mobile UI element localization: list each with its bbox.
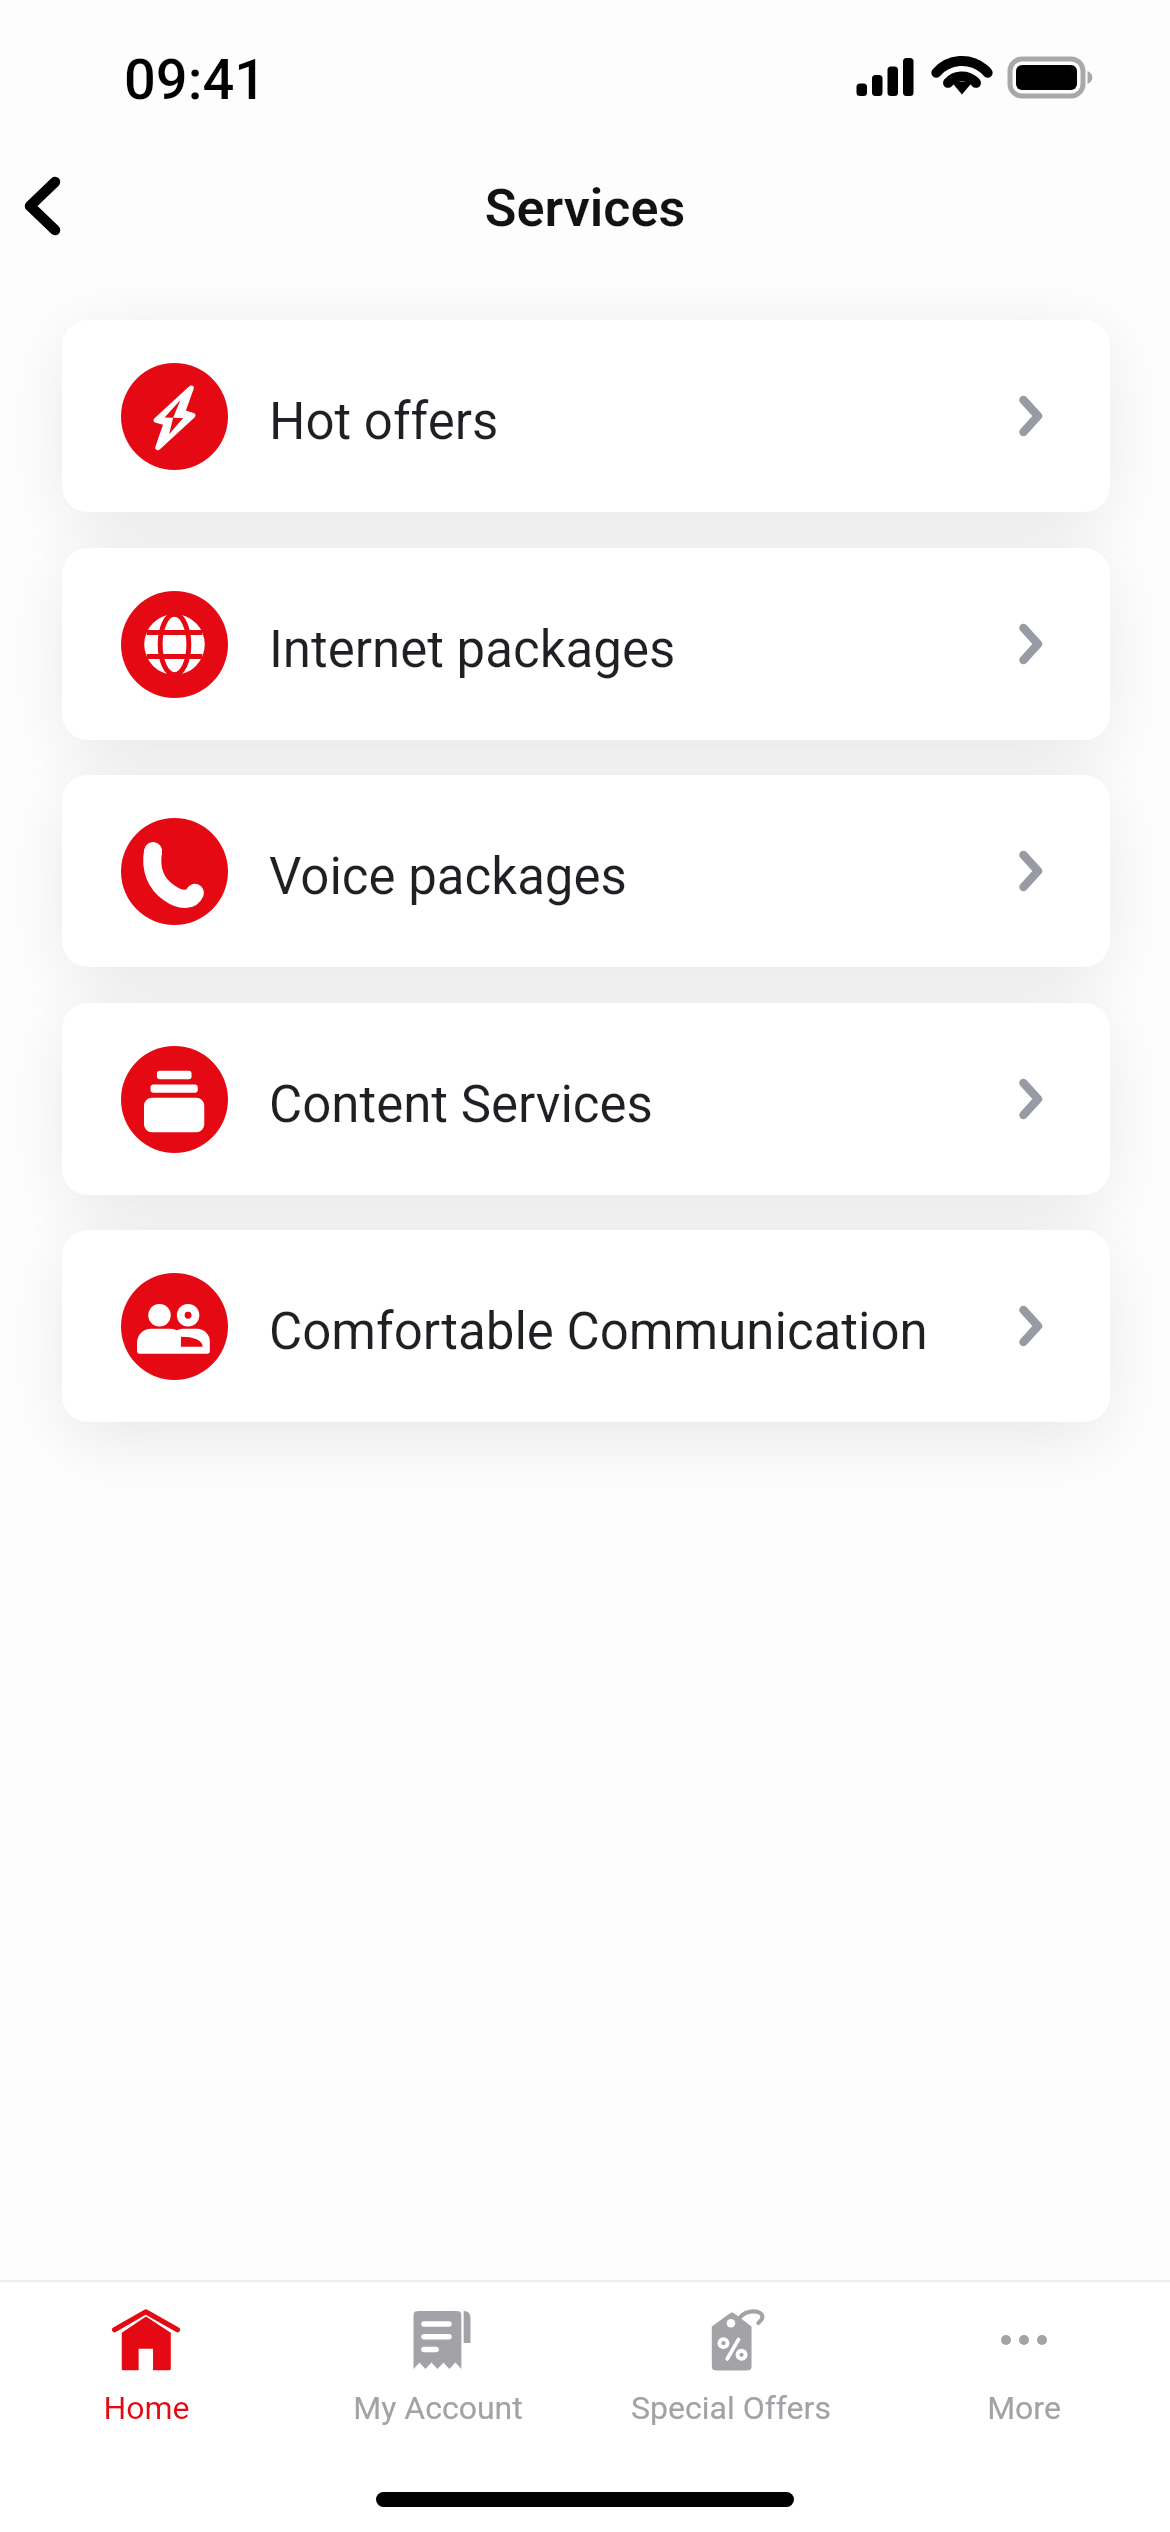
- button[interactable]: Voice packages: [62, 775, 1110, 967]
- staticText: 09:41: [124, 47, 267, 113]
- button[interactable]: Internet packages: [62, 548, 1110, 740]
- staticText: Internet packages: [269, 620, 676, 680]
- staticText: Hot offers: [269, 392, 499, 452]
- staticText: Content Services: [269, 1075, 653, 1135]
- button[interactable]: More: [877, 2282, 1170, 2468]
- staticText: My Account: [353, 2389, 523, 2427]
- button[interactable]: My Account: [292, 2282, 584, 2468]
- staticText: Services: [0, 178, 1170, 239]
- button[interactable]: Back: [2, 150, 88, 262]
- button[interactable]: Comfortable Communication: [62, 1230, 1110, 1422]
- button[interactable]: Special Offers: [584, 2282, 877, 2468]
- staticText: Voice packages: [269, 847, 627, 907]
- button[interactable]: Content Services: [62, 1003, 1110, 1195]
- staticText: Special Offers: [631, 2389, 831, 2427]
- staticText: Home: [103, 2389, 190, 2427]
- staticText: Comfortable Communication: [269, 1302, 928, 1362]
- staticText: More: [987, 2389, 1061, 2427]
- button[interactable]: Home: [0, 2282, 292, 2468]
- button[interactable]: Hot offers: [62, 320, 1110, 512]
